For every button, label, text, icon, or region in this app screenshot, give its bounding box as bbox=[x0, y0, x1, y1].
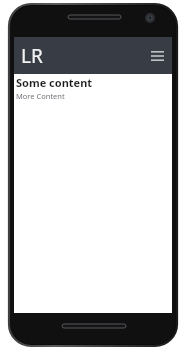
staticText: LR bbox=[21, 43, 43, 69]
staticText: More Content bbox=[16, 91, 65, 101]
staticText: Some content bbox=[16, 75, 93, 90]
button[interactable]: Open navigation menu bbox=[143, 43, 172, 69]
button[interactable]: LR bbox=[14, 41, 47, 71]
